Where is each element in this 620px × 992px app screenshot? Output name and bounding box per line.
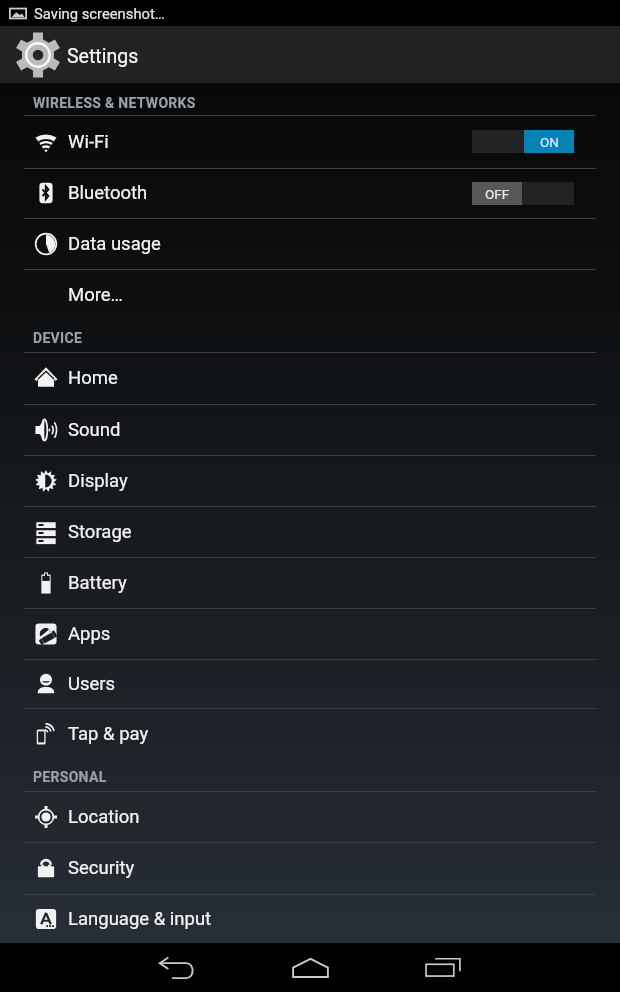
staticText: DEVICE (33, 330, 83, 346)
staticText: Storage (68, 521, 132, 543)
button[interactable]: Security (0, 842, 620, 894)
staticText: Wi-Fi (68, 131, 109, 153)
staticText: Saving screenshot… (34, 5, 165, 22)
button[interactable]: Apps (0, 608, 620, 659)
button[interactable]: Sound (0, 404, 620, 455)
button[interactable]: Home (266, 943, 354, 992)
button[interactable]: Language & input (0, 894, 620, 943)
staticText: Display (68, 470, 128, 492)
button[interactable]: Users (0, 659, 620, 708)
button[interactable]: Wi-Fi (0, 115, 620, 168)
button[interactable]: Battery (0, 557, 620, 608)
button[interactable]: More… (0, 269, 620, 320)
button[interactable]: Tap & pay (0, 708, 620, 759)
staticText: Battery (68, 572, 127, 594)
button[interactable]: Home (0, 352, 620, 404)
staticText: Data usage (68, 233, 161, 255)
staticText: Security (68, 857, 135, 879)
staticText: Sound (68, 419, 121, 441)
staticText: More… (68, 284, 123, 306)
button[interactable]: Recent apps (399, 943, 487, 992)
staticText: Location (68, 806, 140, 828)
staticText: OFF (485, 186, 510, 202)
button[interactable]: Storage (0, 506, 620, 557)
staticText: WIRELESS & NETWORKS (33, 95, 196, 111)
button[interactable]: Back (133, 943, 221, 992)
button[interactable]: Settings icon (15, 32, 61, 78)
staticText: Tap & pay (68, 723, 149, 745)
staticText: ON (540, 134, 559, 150)
button[interactable]: Switch off (472, 182, 574, 205)
button[interactable]: Bluetooth (0, 168, 620, 218)
staticText: Apps (68, 623, 111, 645)
staticText: Users (68, 673, 116, 695)
staticText: Bluetooth (68, 182, 148, 204)
staticText: Language & input (68, 908, 212, 930)
button[interactable]: Switch on (472, 130, 574, 153)
staticText: Settings (67, 45, 139, 68)
button[interactable]: Location (0, 791, 620, 842)
staticText: PERSONAL (33, 769, 107, 785)
button[interactable]: Data usage (0, 218, 620, 269)
staticText: Home (68, 367, 118, 389)
button[interactable]: Display (0, 455, 620, 506)
